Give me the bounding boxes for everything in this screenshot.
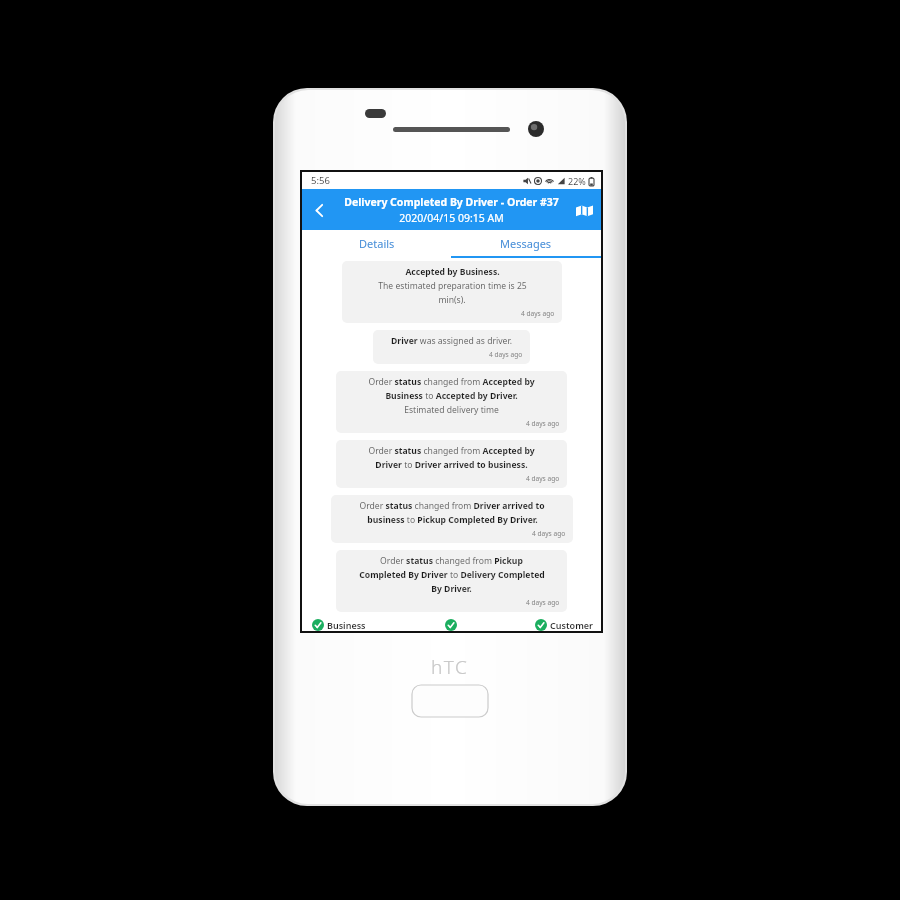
button[interactable]: Messages	[451, 230, 601, 256]
staticText: Estimated delivery time	[404, 404, 499, 416]
staticText: 22%	[568, 175, 586, 187]
button[interactable]: Back	[302, 193, 336, 227]
staticText: 4 days ago	[521, 309, 555, 318]
staticText: Business to Accepted by Driver.	[385, 390, 518, 402]
staticText: Driver was assigned as driver.	[391, 335, 512, 347]
button[interactable]: Order status changed from Pickup	[336, 550, 567, 612]
staticText: 4 days ago	[526, 474, 560, 483]
button[interactable]: Order status changed from Driver arrived…	[331, 495, 573, 543]
staticText: By Driver.	[431, 583, 472, 595]
staticText: Details	[359, 236, 395, 251]
button[interactable]: Details	[302, 230, 451, 256]
staticText: 4 days ago	[532, 529, 566, 538]
staticText: Delivery Completed By Driver - Order #37	[344, 195, 559, 209]
staticText: Completed By Driver to Delivery Complete…	[359, 569, 545, 581]
staticText: Accepted by Business.	[405, 266, 500, 278]
staticText: business to Pickup Completed By Driver.	[367, 514, 538, 526]
staticText: 4 days ago	[526, 598, 560, 607]
button[interactable]: Order status changed from Accepted by	[336, 371, 567, 433]
staticText: Customer	[550, 619, 593, 631]
staticText: Order status changed from Accepted by	[368, 376, 535, 388]
staticText: Business	[327, 619, 366, 631]
staticText: 2020/04/15 09:15 AM	[399, 211, 504, 225]
staticText: Messages	[500, 236, 552, 251]
staticText: min(s).	[438, 294, 466, 306]
staticText: 4 days ago	[526, 419, 560, 428]
staticText: Order status changed from Pickup	[380, 555, 523, 567]
button[interactable]: Accepted by Business.	[342, 261, 562, 323]
staticText: The estimated preparation time is 25	[378, 280, 527, 292]
staticText: 4 days ago	[489, 350, 523, 359]
button[interactable]	[401, 619, 501, 631]
staticText: Order status changed from Accepted by	[368, 445, 535, 457]
staticText: Order status changed from Driver arrived…	[359, 500, 545, 512]
button[interactable]: Driver was assigned as driver.	[373, 330, 530, 364]
button[interactable]: Order status changed from Accepted by	[336, 440, 567, 488]
staticText: 5:56	[311, 174, 330, 187]
staticText: Driver to Driver arrived to business.	[375, 459, 528, 471]
staticText: hTC	[431, 654, 469, 680]
button[interactable]: Customer	[501, 619, 601, 631]
button[interactable]: Map	[567, 193, 601, 227]
button[interactable]: Business	[312, 619, 401, 631]
